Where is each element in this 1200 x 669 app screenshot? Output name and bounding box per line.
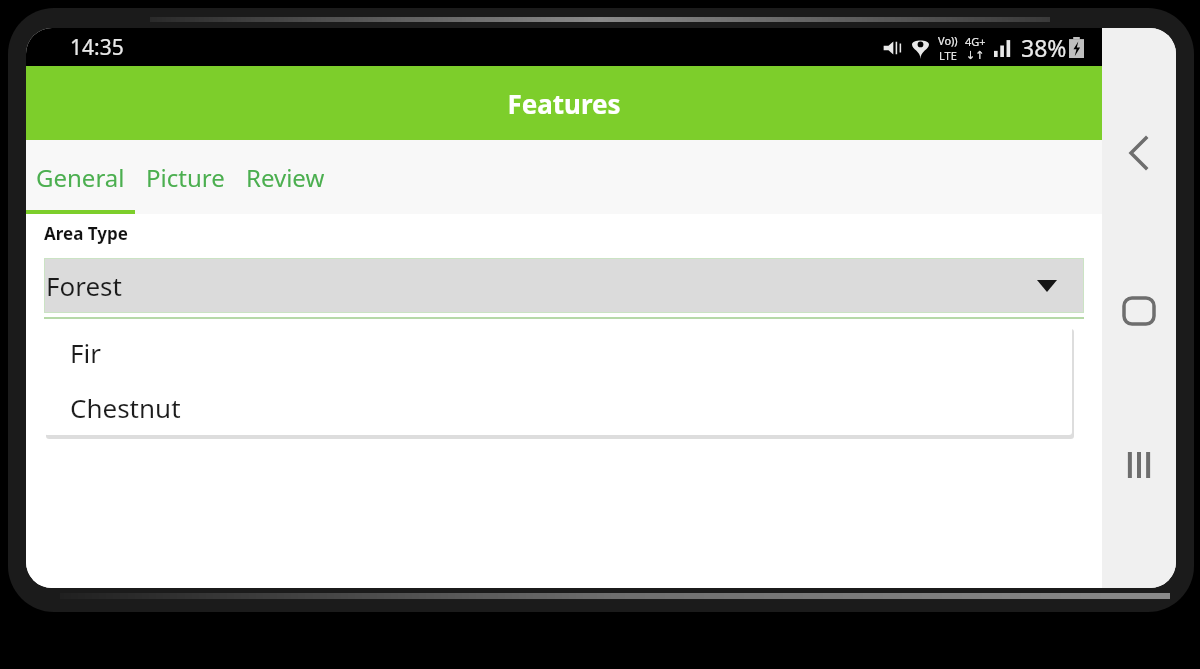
staticText: Features [507,86,621,121]
staticText: 38% [1021,32,1067,63]
staticText: Chestnut [70,390,181,425]
button[interactable]: Back [1109,123,1169,183]
staticText: 4G+ [965,34,986,49]
staticText: Vo)) [938,33,958,48]
staticText: Fir [70,335,101,370]
staticText: ↓↑ [966,49,985,62]
button[interactable]: Fir [44,325,1072,380]
button[interactable]: Picture [135,140,235,214]
staticText: Forest [46,268,122,303]
staticText: Plant Species [44,333,156,356]
button[interactable]: Home [1107,279,1171,343]
staticText: 14:35 [70,33,124,62]
button[interactable]: Review [235,140,335,214]
staticText: Area Type [44,222,128,245]
button[interactable]: Forest [44,258,1084,313]
button[interactable]: General [26,140,135,214]
staticText: Review [246,161,325,194]
staticText: LTE [939,48,957,63]
button[interactable]: Features [26,66,1102,140]
button[interactable]: Chestnut [44,380,1072,435]
staticText: General [36,161,125,194]
staticText: Picture [146,161,225,194]
button[interactable]: Recent apps [1109,435,1169,495]
